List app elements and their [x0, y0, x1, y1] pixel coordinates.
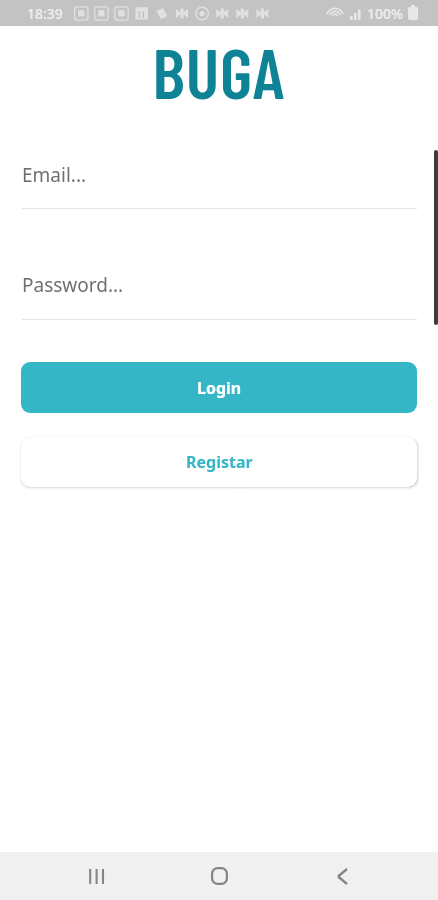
button[interactable]: Registar — [21, 437, 417, 487]
staticText: Registar — [186, 451, 253, 473]
staticText: Password... — [22, 272, 124, 298]
button[interactable]: Home — [187, 860, 251, 892]
button[interactable]: Recent apps — [64, 860, 128, 892]
staticText: Login — [197, 377, 242, 399]
button[interactable]: Password... — [22, 270, 417, 320]
button[interactable]: Back — [310, 860, 374, 892]
button[interactable]: Login — [21, 362, 417, 413]
button[interactable]: Email... — [22, 160, 417, 209]
staticText: 18:39 — [27, 4, 63, 23]
staticText: Email... — [22, 162, 87, 188]
staticText: 100% — [367, 4, 403, 23]
staticText: BUGA — [0, 29, 438, 113]
